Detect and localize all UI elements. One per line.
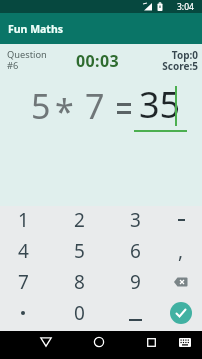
button[interactable]: 7 — [3, 268, 43, 296]
staticText: Question #6 — [7, 48, 47, 72]
button[interactable]: 9 — [115, 268, 155, 296]
button[interactable] — [170, 302, 192, 324]
button[interactable]: 1 — [3, 206, 43, 234]
button[interactable] — [173, 332, 197, 352]
button[interactable] — [85, 332, 113, 352]
button[interactable]: 6 — [115, 237, 155, 265]
button[interactable] — [165, 270, 197, 294]
button[interactable]: 5 — [59, 237, 99, 265]
staticText: 1 — [18, 207, 29, 233]
staticText: 5 — [31, 83, 51, 129]
staticText: 4 — [18, 238, 29, 264]
staticText: 5 — [74, 238, 85, 264]
staticText: 0 — [74, 300, 85, 326]
staticText: 00:03 — [76, 50, 120, 72]
staticText: 3 — [130, 207, 141, 233]
staticText: 2 — [74, 207, 85, 233]
button[interactable]: 3 — [115, 206, 155, 234]
button[interactable] — [161, 206, 201, 234]
staticText: 7 — [85, 83, 105, 129]
button[interactable] — [115, 299, 155, 327]
button[interactable] — [3, 299, 43, 327]
staticText: 7 — [18, 269, 29, 295]
staticText: 35 — [139, 80, 181, 129]
staticText: 9 — [130, 269, 141, 295]
button[interactable]: 4 — [3, 237, 43, 265]
button[interactable] — [32, 332, 60, 352]
staticText: 8 — [74, 269, 85, 295]
staticText: Fun Maths — [8, 22, 63, 36]
button[interactable]: 8 — [59, 268, 99, 296]
staticText: 6 — [130, 238, 141, 264]
button[interactable]: 0 — [59, 299, 99, 327]
staticText: , — [178, 238, 184, 264]
button[interactable]: , — [161, 237, 201, 265]
staticText: 3:04 — [177, 1, 194, 13]
button[interactable]: 2 — [59, 206, 99, 234]
button[interactable] — [137, 332, 165, 352]
staticText: Top:0 Score:5 — [162, 48, 198, 73]
staticText: * — [55, 88, 74, 134]
